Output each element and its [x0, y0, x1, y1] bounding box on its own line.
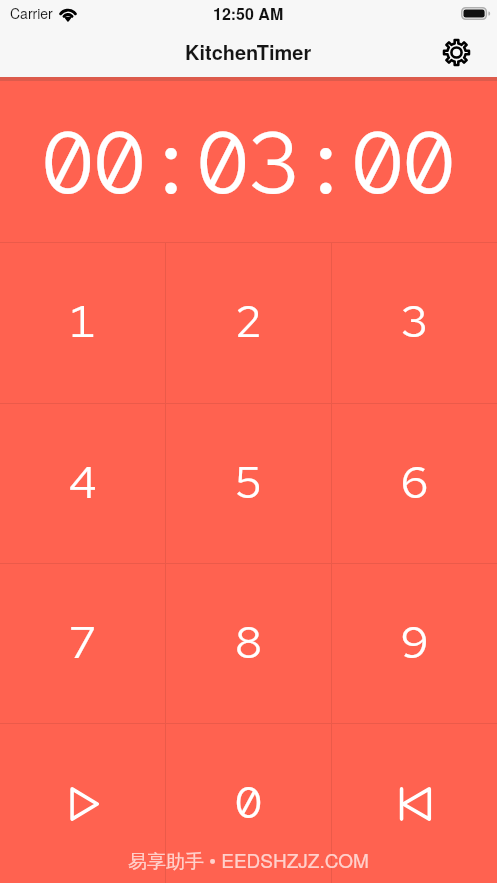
button[interactable]: 0 [166, 724, 331, 883]
staticText: KitchenTimer [185, 37, 312, 66]
staticText: 12:50 AM [213, 2, 284, 25]
staticText: 易享助手 • EEDSHZJZ.COM [128, 846, 369, 873]
button[interactable]: 2 [166, 243, 331, 403]
button[interactable]: Reset [332, 724, 497, 883]
staticText: 3 [401, 291, 429, 351]
staticText: Carrier [10, 3, 53, 23]
button[interactable]: 9 [332, 564, 497, 723]
button[interactable]: 1 [0, 243, 165, 403]
button[interactable]: 6 [332, 404, 497, 563]
staticText: 6 [401, 452, 429, 512]
staticText: 8 [235, 612, 263, 672]
staticText: 00:03:00 [42, 105, 455, 219]
staticText: 9 [401, 612, 429, 672]
staticText: 5 [235, 452, 263, 512]
button[interactable]: Settings [439, 35, 473, 69]
button[interactable]: Start [0, 724, 165, 883]
button[interactable]: 8 [166, 564, 331, 723]
button[interactable]: 5 [166, 404, 331, 563]
button[interactable]: 7 [0, 564, 165, 723]
staticText: 0 [235, 772, 263, 832]
button[interactable]: 3 [332, 243, 497, 403]
staticText: 4 [69, 452, 97, 512]
staticText: 2 [235, 291, 263, 351]
staticText: 1 [69, 291, 97, 351]
staticText: 7 [69, 612, 97, 672]
button[interactable]: 4 [0, 404, 165, 563]
